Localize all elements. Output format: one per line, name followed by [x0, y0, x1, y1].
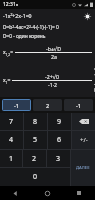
- staticText: 4: [9, 135, 14, 145]
- staticText: ДАЛЕЕ: [76, 165, 90, 171]
- button[interactable]: Backspace: [72, 113, 95, 130]
- button[interactable]: Toggle theme: [83, 12, 92, 21]
- staticText: 3: [56, 154, 61, 164]
- staticText: -1: [14, 102, 19, 109]
- staticText: 0: [33, 172, 38, 182]
- button[interactable]: -1: [64, 99, 93, 111]
- staticText: 2: [32, 154, 37, 164]
- staticText: D=0 - один корень: [3, 33, 46, 40]
- staticText: 5: [33, 135, 38, 145]
- staticText: x1,2=: [3, 49, 14, 56]
- staticText: -2+√0: [45, 73, 59, 80]
- staticText: -1·2: [48, 81, 57, 88]
- staticText: D=b2-4ac=22-4·(-1)·(-1)= 0: [3, 24, 59, 31]
- button[interactable]: Home: [31, 186, 63, 200]
- button[interactable]: 2: [23, 150, 46, 167]
- button[interactable]: Back: [0, 186, 31, 200]
- staticText: 12:31: [3, 1, 16, 8]
- staticText: 7: [9, 117, 14, 127]
- button[interactable]: Recent apps: [63, 186, 95, 200]
- button[interactable]: 7: [0, 113, 23, 130]
- button[interactable]: 9: [48, 113, 71, 130]
- button[interactable]: 0: [0, 168, 70, 186]
- staticText: 6: [57, 135, 62, 145]
- staticText: -1x2+2x-1=0: [3, 12, 32, 19]
- button[interactable]: 5: [24, 131, 47, 149]
- button[interactable]: 6: [48, 131, 71, 149]
- staticText: -1: [76, 102, 81, 109]
- button[interactable]: 8: [24, 113, 47, 130]
- button[interactable]: -1: [2, 99, 31, 111]
- button[interactable]: ДАЛЕЕ: [71, 150, 95, 186]
- staticText: 2a: [51, 53, 57, 60]
- staticText: 2: [46, 102, 50, 109]
- staticText: x1=: [3, 77, 11, 84]
- staticText: 8: [33, 117, 38, 127]
- button[interactable]: Change sign: [72, 131, 95, 149]
- button[interactable]: 1: [0, 150, 22, 167]
- staticText: +/-: [80, 136, 88, 144]
- staticText: 1: [9, 154, 14, 164]
- button[interactable]: 4: [0, 131, 23, 149]
- staticText: 9: [57, 117, 62, 127]
- staticText: -b±√D: [46, 45, 61, 52]
- button[interactable]: 3: [47, 150, 70, 167]
- button[interactable]: 2: [33, 99, 62, 111]
